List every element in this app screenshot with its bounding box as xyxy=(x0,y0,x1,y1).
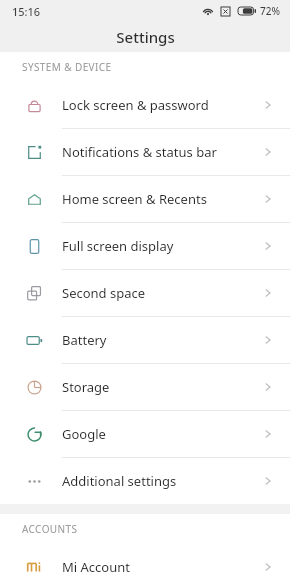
staticText: Settings xyxy=(116,27,175,47)
button[interactable]: Full screen display xyxy=(0,223,290,269)
button[interactable]: Google xyxy=(0,411,290,457)
button[interactable]: Storage xyxy=(0,364,290,410)
staticText: Notifications & status bar xyxy=(62,143,274,161)
button[interactable]: Lock screen & password xyxy=(0,82,290,128)
staticText: Storage xyxy=(62,378,274,396)
staticText: Full screen display xyxy=(62,237,274,255)
staticText: Mi Account xyxy=(62,558,274,576)
button[interactable]: Battery xyxy=(0,317,290,363)
button[interactable]: Additional settings xyxy=(0,458,290,504)
staticText: Google xyxy=(62,425,274,443)
button[interactable]: Mi Account xyxy=(0,544,290,580)
staticText: Additional settings xyxy=(62,472,274,490)
staticText: ACCOUNTS xyxy=(22,522,78,536)
button[interactable]: Second space xyxy=(0,270,290,316)
button[interactable]: Notifications & status bar xyxy=(0,129,290,175)
staticText: Second space xyxy=(62,284,274,302)
staticText: Home screen & Recents xyxy=(62,190,274,208)
staticText: SYSTEM & DEVICE xyxy=(22,60,112,74)
staticText: Battery xyxy=(62,331,274,349)
button[interactable]: Home screen & Recents xyxy=(0,176,290,222)
staticText: 72% xyxy=(260,4,280,18)
staticText: Lock screen & password xyxy=(62,96,274,114)
staticText: 15:16 xyxy=(12,4,41,19)
